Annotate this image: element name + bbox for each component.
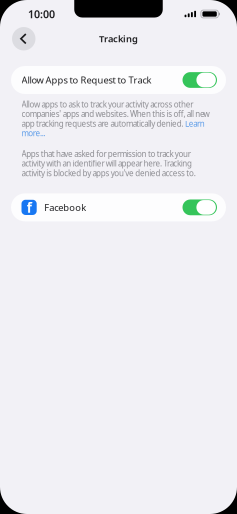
- button[interactable]: f: [11, 193, 226, 221]
- staticText: companies' apps and websites. When this …: [21, 109, 210, 119]
- staticText: Tracking: [99, 33, 138, 45]
- staticText: activity with an identifier will appear …: [21, 158, 192, 169]
- staticText: f: [27, 199, 32, 216]
- staticText: Apps that have asked for permission to t…: [21, 148, 191, 159]
- button[interactable]: Allow Apps to Request to Track: [11, 66, 226, 94]
- staticText: Learn: [185, 118, 205, 129]
- staticText: 10:00: [28, 7, 55, 21]
- staticText: activity is blocked by apps you've denie…: [21, 168, 196, 178]
- staticText: Allow Apps to Request to Track: [21, 74, 151, 86]
- button[interactable]: Back: [12, 27, 35, 50]
- staticText: Allow apps to ask to track your activity…: [21, 99, 193, 110]
- staticText: more...: [21, 128, 45, 138]
- staticText: Facebook: [44, 201, 86, 214]
- staticText: app tracking requests are automatically …: [21, 118, 185, 129]
